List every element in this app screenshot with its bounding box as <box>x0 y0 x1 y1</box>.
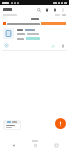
button[interactable]: Archive <box>51 6 58 13</box>
button[interactable]: Sync <box>50 43 56 49</box>
button[interactable] <box>3 22 66 25</box>
button[interactable]: Home <box>32 142 38 148</box>
button[interactable]: Search <box>35 6 42 13</box>
button[interactable]: Attachment <box>3 28 14 39</box>
button[interactable]: More options <box>59 6 66 13</box>
button[interactable]: Recent apps <box>53 142 59 148</box>
button[interactable]: Settings <box>3 42 10 49</box>
button[interactable]: Widget preview <box>3 120 21 130</box>
button[interactable]: Compose <box>55 118 66 129</box>
button[interactable] <box>3 8 12 11</box>
button[interactable]: Attachment <box>0 27 69 41</box>
button[interactable]: Delete <box>43 6 50 13</box>
button[interactable]: Remove <box>60 43 66 49</box>
button[interactable]: Back <box>10 142 16 148</box>
